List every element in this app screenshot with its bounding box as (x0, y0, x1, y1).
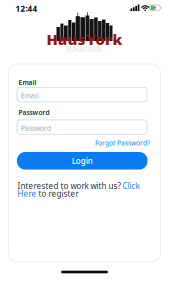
button[interactable]: Forgot Password? (95, 139, 150, 147)
staticText: Here (17, 188, 36, 199)
staticText: Password (21, 124, 51, 132)
staticText: 12:44 (15, 3, 37, 14)
staticText: Click (122, 180, 139, 191)
button[interactable]: Here (17, 188, 36, 199)
staticText: HausYork (47, 29, 122, 49)
staticText: Email (18, 78, 36, 87)
button[interactable]: Login (17, 152, 147, 170)
staticText: Password (18, 108, 49, 117)
staticText: Interested to work with us? (17, 180, 122, 191)
staticText: Login (72, 155, 93, 166)
staticText: HausYork (66, 43, 103, 54)
staticText: Email (21, 91, 39, 100)
button[interactable]: Click (122, 180, 139, 191)
staticText: to register (36, 188, 78, 199)
staticText: Forgot Password? (95, 139, 150, 147)
